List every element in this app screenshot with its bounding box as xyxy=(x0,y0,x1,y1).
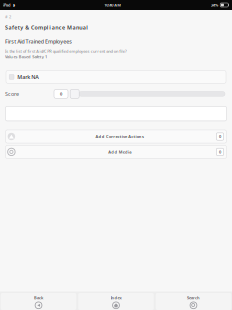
staticText: Is the list of first Aid/CPR qualified e… xyxy=(5,49,127,54)
staticText: 0 xyxy=(60,91,62,96)
button[interactable]: 0 xyxy=(54,89,68,98)
staticText: ◗ xyxy=(13,3,15,7)
staticText: Back xyxy=(34,295,43,300)
staticText: Score xyxy=(5,90,19,97)
staticText: iPad xyxy=(3,2,11,8)
staticText: 10:40 AM xyxy=(104,2,121,8)
staticText: Add Media xyxy=(108,149,131,154)
staticText: 34% xyxy=(211,2,219,8)
staticText: Safety & Compliance Manual xyxy=(5,24,88,31)
staticText: Index xyxy=(110,295,121,300)
staticText: Values Based Safety 1 xyxy=(5,54,47,59)
staticText: # 2 xyxy=(5,14,11,19)
staticText: Search xyxy=(187,295,200,300)
staticText: First Aid Trained Employees xyxy=(5,38,72,45)
staticText: 0 xyxy=(219,134,221,139)
button[interactable]: Score slider xyxy=(70,89,79,98)
button[interactable]: Search xyxy=(156,293,231,310)
staticText: Mark NA xyxy=(17,73,39,80)
staticText: 0 xyxy=(219,149,221,154)
button[interactable]: Add Media xyxy=(5,145,226,158)
button[interactable]: Index xyxy=(78,293,154,310)
button[interactable]: Mark NA xyxy=(6,70,226,83)
button[interactable]: Add Corrective Actions xyxy=(5,130,226,143)
button[interactable]: Back xyxy=(1,293,76,310)
staticText: Add Corrective Actions xyxy=(95,134,144,139)
